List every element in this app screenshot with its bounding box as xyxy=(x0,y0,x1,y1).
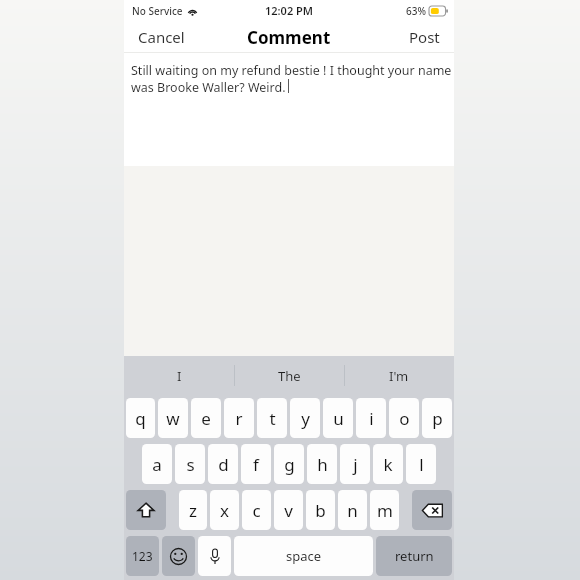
staticText: I'm xyxy=(389,367,409,385)
staticText: f xyxy=(253,453,259,476)
staticText: o xyxy=(399,407,410,430)
button[interactable]: z xyxy=(179,490,207,530)
button[interactable]: space xyxy=(234,536,373,576)
staticText: k xyxy=(383,453,393,476)
staticText: space xyxy=(286,547,322,565)
button[interactable]: p xyxy=(422,398,452,438)
button[interactable]: v xyxy=(274,490,303,530)
staticText: n xyxy=(347,499,358,522)
staticText: b xyxy=(315,499,326,522)
staticText: l xyxy=(419,453,424,476)
button[interactable]: Dictation xyxy=(198,536,231,576)
staticText: y xyxy=(301,407,310,430)
staticText: Cancel xyxy=(138,27,185,47)
button[interactable]: The xyxy=(234,356,344,395)
button[interactable]: d xyxy=(208,444,238,484)
button[interactable]: Emoji xyxy=(162,536,195,576)
staticText: g xyxy=(284,453,295,476)
staticText: u xyxy=(333,407,344,430)
button[interactable]: o xyxy=(389,398,419,438)
button[interactable]: s xyxy=(175,444,205,484)
staticText: w xyxy=(166,407,180,430)
button[interactable]: Still waiting on my refund bestie ! I th… xyxy=(124,53,454,166)
staticText: 12:02 PM xyxy=(265,3,314,18)
button[interactable]: 123 xyxy=(126,536,159,576)
staticText: 123 xyxy=(132,548,153,564)
staticText: I xyxy=(177,367,182,385)
staticText: p xyxy=(432,407,443,430)
button[interactable]: y xyxy=(290,398,320,438)
button[interactable]: w xyxy=(158,398,188,438)
button[interactable]: h xyxy=(307,444,337,484)
staticText: z xyxy=(189,499,197,522)
button[interactable]: f xyxy=(241,444,271,484)
button[interactable]: u xyxy=(323,398,353,438)
staticText: x xyxy=(220,499,229,522)
button[interactable]: x xyxy=(210,490,239,530)
button[interactable]: e xyxy=(191,398,221,438)
staticText: d xyxy=(218,453,229,476)
staticText: c xyxy=(252,499,261,522)
button[interactable]: r xyxy=(224,398,254,438)
staticText: Comment xyxy=(247,26,331,49)
button[interactable]: c xyxy=(242,490,271,530)
staticText: Still waiting on my refund bestie ! I th… xyxy=(131,62,452,96)
staticText: The xyxy=(278,367,301,385)
button[interactable]: a xyxy=(142,444,172,484)
staticText: i xyxy=(369,407,374,430)
button[interactable]: m xyxy=(370,490,399,530)
staticText: j xyxy=(353,453,358,476)
staticText: return xyxy=(395,547,434,565)
button[interactable]: l xyxy=(406,444,436,484)
button[interactable]: g xyxy=(274,444,304,484)
button[interactable]: Post xyxy=(395,21,454,53)
button[interactable]: j xyxy=(340,444,370,484)
staticText: No Service xyxy=(132,4,183,18)
button[interactable]: I'm xyxy=(344,356,454,395)
button[interactable]: n xyxy=(338,490,367,530)
button[interactable]: i xyxy=(356,398,386,438)
staticText: t xyxy=(269,407,276,430)
staticText: h xyxy=(317,453,328,476)
button[interactable]: I xyxy=(124,356,234,395)
button[interactable]: t xyxy=(257,398,287,438)
button[interactable]: q xyxy=(126,398,155,438)
staticText: q xyxy=(135,407,146,430)
button[interactable]: Cancel xyxy=(124,21,199,53)
button[interactable]: Shift xyxy=(126,490,166,530)
staticText: e xyxy=(201,407,211,430)
button[interactable]: b xyxy=(306,490,335,530)
staticText: m xyxy=(377,499,393,522)
staticText: a xyxy=(152,453,162,476)
staticText: v xyxy=(284,499,293,522)
staticText: Post xyxy=(409,27,440,47)
button[interactable]: return xyxy=(376,536,452,576)
button[interactable]: k xyxy=(373,444,403,484)
button[interactable]: Backspace xyxy=(412,490,452,530)
staticText: 63% xyxy=(406,4,426,18)
staticText: s xyxy=(186,453,195,476)
staticText: r xyxy=(235,407,243,430)
